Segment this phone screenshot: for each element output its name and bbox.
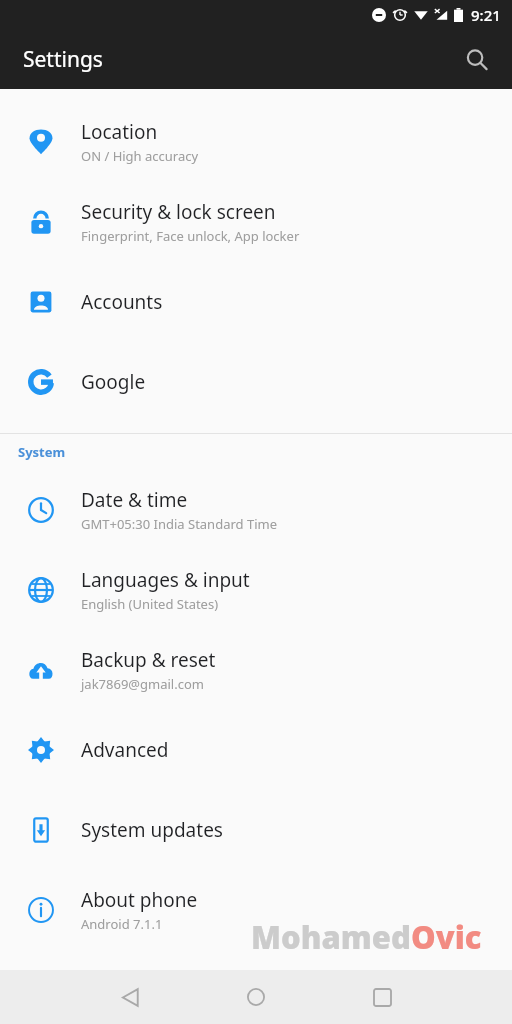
staticText: ON / High accuracy [81, 147, 199, 165]
staticText: Ovic [411, 916, 482, 958]
staticText: About phone [81, 887, 198, 913]
staticText: Android 7.1.1 [81, 915, 163, 933]
staticText: jak7869@gmail.com [81, 675, 204, 693]
staticText: Date & time [81, 487, 188, 513]
button[interactable]: Languages & input [0, 550, 512, 630]
staticText: Security & lock screen [81, 199, 276, 225]
button[interactable]: Backup & reset [0, 630, 512, 710]
button[interactable]: Home [232, 973, 280, 1021]
staticText: Mohamed [251, 916, 411, 958]
staticText: Languages & input [81, 567, 250, 593]
staticText: System [18, 443, 66, 461]
button[interactable]: Advanced [0, 710, 512, 790]
staticText: Backup & reset [81, 647, 216, 673]
button[interactable]: Search [454, 37, 500, 83]
staticText: 9:21 [471, 5, 501, 25]
button[interactable]: Location [0, 102, 512, 182]
staticText: English (United States) [81, 595, 219, 613]
button[interactable]: Date & time [0, 470, 512, 550]
staticText: Settings [23, 45, 103, 74]
staticText: Fingerprint, Face unlock, App locker [81, 227, 300, 245]
staticText: GMT+05:30 India Standard Time [81, 515, 277, 533]
staticText: Advanced [81, 737, 169, 763]
staticText: Location [81, 119, 158, 145]
button[interactable]: About phone [0, 870, 512, 950]
button[interactable]: Recents [358, 973, 406, 1021]
staticText: Accounts [81, 289, 163, 315]
button[interactable]: System updates [0, 790, 512, 870]
button[interactable]: Accounts [0, 262, 512, 342]
button[interactable]: Google [0, 342, 512, 422]
button[interactable]: Back [106, 973, 154, 1021]
button[interactable]: Security & lock screen [0, 182, 512, 262]
staticText: Google [81, 369, 146, 395]
staticText: System updates [81, 817, 223, 843]
